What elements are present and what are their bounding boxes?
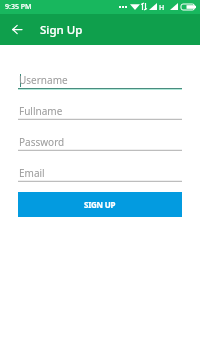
- staticText: SIGN UP: [84, 199, 116, 210]
- staticText: H: [159, 3, 165, 13]
- button[interactable]: Fullname: [18, 97, 182, 121]
- staticText: Password: [19, 135, 65, 149]
- button[interactable]: Email: [18, 159, 182, 183]
- staticText: Username: [19, 73, 68, 87]
- button[interactable]: Back: [8, 21, 26, 39]
- staticText: Sign Up: [40, 22, 83, 38]
- staticText: 9:35 PM: [5, 2, 32, 12]
- staticText: Fullname: [19, 104, 63, 118]
- button[interactable]: Username: [18, 66, 182, 90]
- button[interactable]: Password: [18, 128, 182, 152]
- button[interactable]: SIGN UP: [18, 192, 182, 217]
- staticText: Email: [19, 166, 45, 180]
